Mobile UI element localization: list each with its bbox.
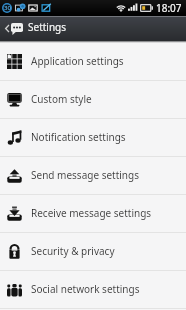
- staticText: Application settings: [31, 54, 124, 68]
- staticText: Custom style: [31, 92, 92, 106]
- staticText: Notification settings: [31, 130, 126, 144]
- staticText: Security & privacy: [31, 244, 115, 258]
- staticText: Receive message settings: [31, 206, 152, 220]
- staticText: 30: [4, 4, 11, 12]
- button[interactable]: Notification settings: [0, 119, 186, 156]
- staticText: Send message settings: [31, 168, 139, 182]
- button[interactable]: Receive message settings: [0, 195, 186, 232]
- button[interactable]: Back to Settings: [0, 16, 186, 41]
- staticText: Social network settings: [31, 282, 140, 296]
- button[interactable]: Security & privacy: [0, 233, 186, 270]
- staticText: Settings: [28, 20, 67, 34]
- button[interactable]: Application settings: [0, 43, 186, 80]
- button[interactable]: Send message settings: [0, 157, 186, 194]
- button[interactable]: Custom style: [0, 81, 186, 118]
- button[interactable]: Social network settings: [0, 271, 186, 308]
- staticText: 18:07: [156, 1, 182, 15]
